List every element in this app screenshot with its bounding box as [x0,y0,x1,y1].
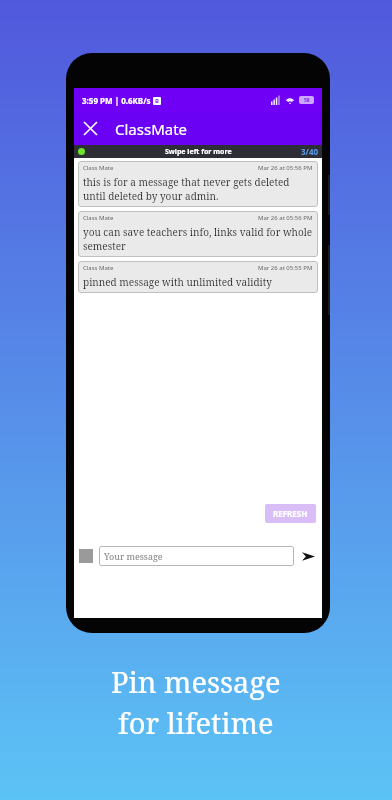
staticText: Mar 26 at 05:56 PM [258,164,313,172]
staticText: Swipe left for more [165,147,232,157]
staticText: 58 [304,97,310,104]
staticText: for lifetime [118,703,274,742]
staticText: 3/40 [301,146,319,157]
staticText: REFRESH [273,508,308,519]
staticText: Class Mate [83,264,114,272]
button[interactable]: Swipe left for more [74,145,322,158]
staticText: Mar 26 at 05:56 PM [258,214,313,222]
staticText: Mar 26 at 05:55 PM [258,264,313,272]
staticText: ClassMate [115,119,188,139]
staticText: pinned message with unlimited validity [83,275,272,289]
staticText: Class Mate [83,214,114,222]
staticText: Your message [104,550,163,562]
staticText: Class Mate [83,164,114,172]
button[interactable]: Class Mate [78,261,318,293]
button[interactable]: REFRESH [265,504,316,523]
staticText: 3:59 PM | 0.6KB/s [82,95,151,106]
button[interactable]: Class Mate [78,161,318,207]
button[interactable]: Close [74,112,107,145]
staticText: you can save teachers info, links valid … [83,225,313,253]
button[interactable]: Class Mate [78,211,318,257]
staticText: B [155,97,159,105]
button[interactable]: Your message [99,546,294,566]
staticText: this is for a message that never gets de… [83,175,313,203]
button[interactable]: Send [299,547,317,565]
staticText: Pin message [111,662,281,701]
